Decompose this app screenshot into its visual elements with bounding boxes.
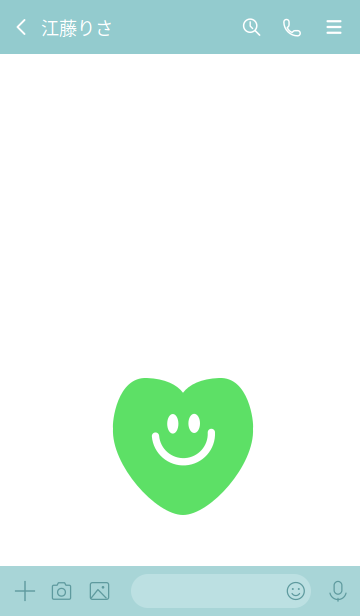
button[interactable]: Search xyxy=(229,0,274,54)
button[interactable]: Camera xyxy=(43,566,80,616)
staticText: 江藤りさ xyxy=(41,14,113,40)
button[interactable]: Menu xyxy=(319,0,353,54)
button[interactable]: Message xyxy=(131,574,311,608)
button[interactable]: Back xyxy=(9,0,33,54)
button[interactable]: Photos xyxy=(80,566,119,616)
button[interactable]: 江藤りさ xyxy=(33,0,113,54)
button[interactable]: Voice message xyxy=(327,566,357,616)
button[interactable]: More xyxy=(7,566,43,616)
button[interactable]: Call xyxy=(274,0,319,54)
